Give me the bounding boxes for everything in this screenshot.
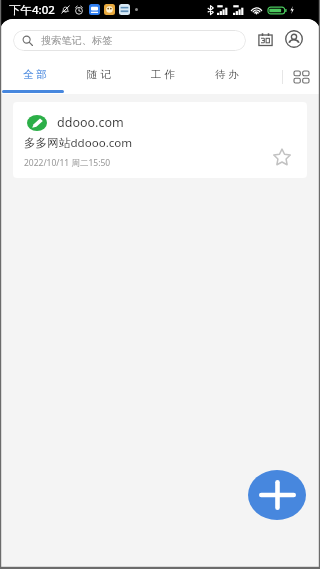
staticText: 全部 [23,68,50,81]
button[interactable]: Account [282,27,306,51]
button[interactable]: Favorite [270,145,294,169]
button[interactable]: Add note [248,470,306,520]
button[interactable]: Grid view [283,59,320,94]
staticText: 2022/10/11 周二15:50 [24,157,111,169]
button[interactable]: ddooo.com [13,102,307,178]
button[interactable]: 搜索笔记、标签 [13,30,246,51]
staticText: 随记 [87,68,114,81]
staticText: 待办 [215,68,242,81]
button[interactable]: 工作 [128,59,192,94]
staticText: 搜索笔记、标签 [41,34,113,47]
button[interactable]: Calendar [253,27,277,51]
staticText: 工作 [151,68,178,81]
staticText: 下午4:02 [9,2,55,18]
button[interactable]: 全部 [0,59,64,94]
staticText: ddooo.com [57,114,124,131]
button[interactable]: 随记 [64,59,128,94]
button[interactable]: 待办 [192,59,256,94]
staticText: 多多网站ddooo.com [24,135,133,151]
